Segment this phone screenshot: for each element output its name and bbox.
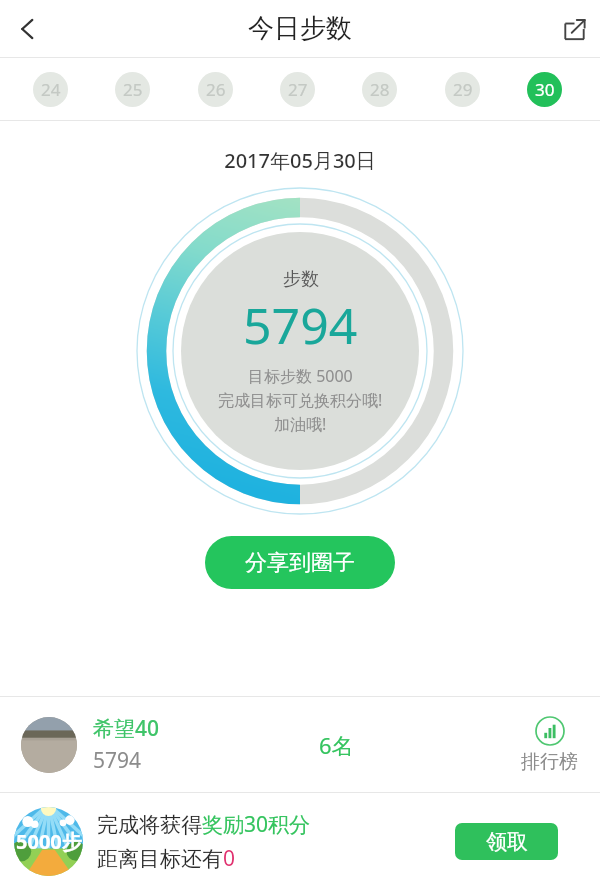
staticText: 加油哦!: [274, 413, 327, 435]
button[interactable]: Share: [548, 3, 600, 55]
button[interactable]: 希望40: [0, 697, 600, 792]
staticText: 希望40: [93, 714, 160, 743]
button[interactable]: 排行榜: [521, 716, 578, 774]
button[interactable]: 分享到圈子: [205, 536, 395, 589]
button[interactable]: 30: [527, 72, 562, 107]
staticText: 26: [206, 78, 226, 101]
button[interactable]: 领取: [455, 823, 558, 860]
staticText: 5794: [93, 746, 142, 775]
button[interactable]: 26: [198, 72, 233, 107]
button[interactable]: 28: [362, 72, 397, 107]
staticText: 完成目标可兑换积分哦!: [218, 389, 383, 411]
staticText: 距离目标还有0: [97, 844, 236, 873]
staticText: 2017年05月30日: [0, 147, 600, 174]
staticText: 5000步: [16, 828, 82, 855]
staticText: 分享到圈子: [245, 549, 355, 577]
button[interactable]: 29: [445, 72, 480, 107]
staticText: 步数: [283, 268, 319, 291]
staticText: 目标步数 5000: [248, 365, 353, 387]
button[interactable]: 27: [280, 72, 315, 107]
staticText: 27: [288, 78, 308, 101]
button[interactable]: 25: [115, 72, 150, 107]
staticText: 25: [123, 78, 143, 101]
staticText: 今日步数: [248, 12, 352, 45]
staticText: 完成将获得奖励30积分: [97, 810, 311, 839]
button[interactable]: 24: [33, 72, 68, 107]
staticText: 排行榜: [521, 750, 578, 774]
staticText: 6名: [319, 730, 354, 760]
staticText: 29: [453, 78, 473, 101]
staticText: 24: [41, 78, 61, 101]
staticText: 5794: [243, 291, 358, 359]
staticText: 领取: [486, 829, 528, 855]
button[interactable]: Back: [0, 1, 56, 57]
staticText: 30: [535, 78, 555, 101]
staticText: 28: [370, 78, 390, 101]
